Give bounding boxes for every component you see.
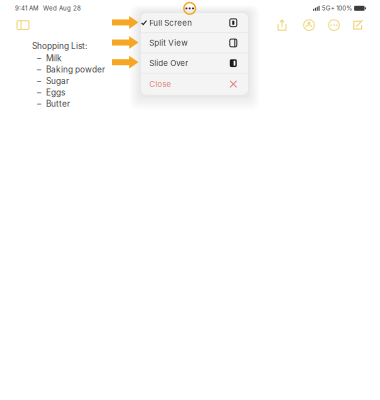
button[interactable]: Split View [141, 33, 248, 53]
staticText: 9:41 AM [15, 5, 39, 12]
button[interactable]: More [324, 16, 344, 34]
staticText: – [37, 99, 41, 109]
staticText: Baking powder [46, 65, 105, 75]
staticText: Butter [46, 99, 70, 109]
button[interactable]: Close [141, 74, 248, 95]
button[interactable]: Slide Over [141, 53, 248, 73]
staticText: 100% [336, 5, 352, 12]
staticText: Eggs [46, 87, 65, 97]
staticText: – [37, 53, 41, 63]
button[interactable]: Account [299, 16, 319, 34]
button[interactable]: Compose [348, 16, 368, 34]
button[interactable]: Full Screen [141, 13, 248, 32]
staticText: Milk [46, 53, 62, 63]
staticText: Shopping List: [32, 41, 87, 51]
staticText: Slide Over [149, 58, 188, 68]
staticText: Split View [149, 38, 188, 48]
button[interactable]: Toggle Sidebar [13, 16, 33, 34]
staticText: Close [149, 79, 171, 89]
staticText: Wed Aug 28 [43, 5, 81, 12]
button[interactable]: Share [272, 16, 292, 34]
staticText: – [37, 65, 41, 75]
staticText: Full Screen [149, 18, 192, 28]
staticText: – [37, 87, 41, 97]
staticText: Sugar [46, 76, 69, 86]
staticText: 5G+ [322, 5, 335, 12]
staticText: – [37, 76, 41, 86]
